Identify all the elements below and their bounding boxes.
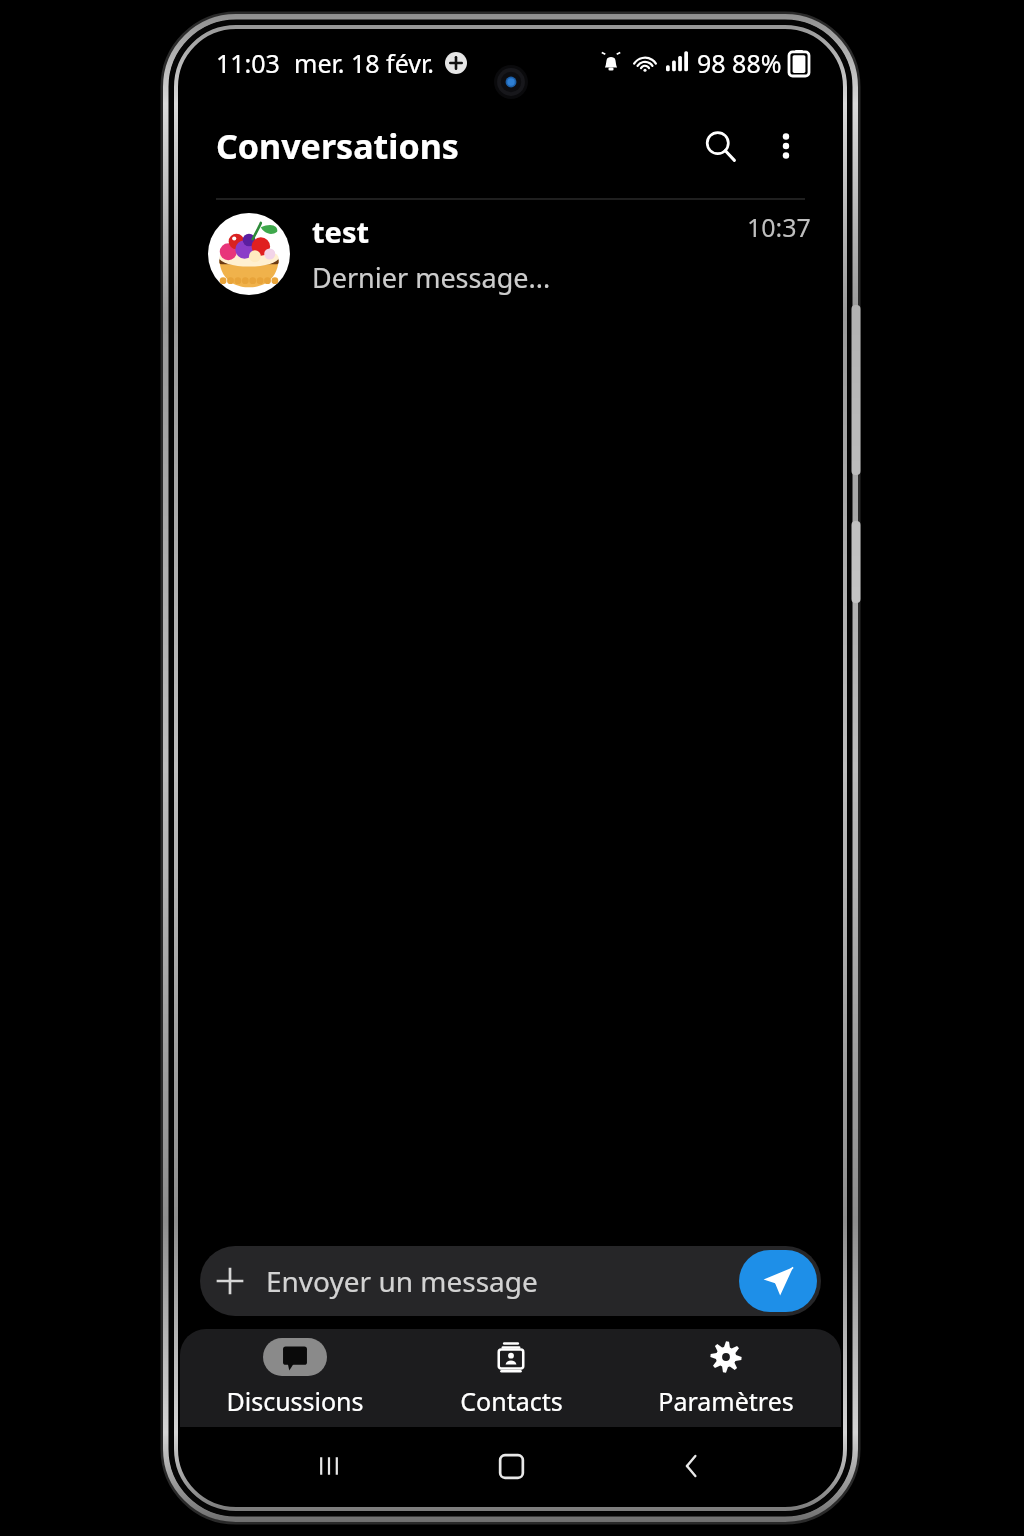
button[interactable]: Discussions xyxy=(195,1329,395,1427)
staticText: Envoyer un message xyxy=(266,1262,739,1300)
button[interactable]: Recent apps xyxy=(297,1434,361,1498)
button[interactable]: Add attachment xyxy=(200,1251,260,1311)
button[interactable]: Search xyxy=(691,117,749,175)
staticText: 11:03 xyxy=(216,46,280,80)
button[interactable]: test xyxy=(180,200,841,308)
staticText: Conversations xyxy=(216,123,459,169)
button[interactable]: Contacts xyxy=(411,1329,611,1427)
staticText: Discussions xyxy=(226,1384,364,1418)
staticText: Dernier message... xyxy=(312,259,551,296)
button[interactable]: Back xyxy=(660,1434,724,1498)
staticText: mer. 18 févr. xyxy=(294,46,435,80)
button[interactable]: Paramètres xyxy=(626,1329,826,1427)
staticText: 98 88% xyxy=(697,46,782,80)
staticText: test xyxy=(312,212,370,251)
staticText: Paramètres xyxy=(658,1384,794,1418)
staticText: Contacts xyxy=(460,1384,563,1418)
button[interactable]: Send xyxy=(739,1250,817,1312)
button[interactable]: Home xyxy=(479,1434,543,1498)
button[interactable]: More options xyxy=(757,117,815,175)
staticText: 10:37 xyxy=(747,210,811,244)
